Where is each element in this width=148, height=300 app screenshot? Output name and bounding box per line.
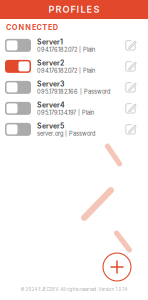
staticText: Server2 (37, 59, 64, 67)
button[interactable]: Toggle Server4 (0, 98, 37, 119)
button[interactable]: Toggle Server5 (0, 119, 37, 140)
button[interactable]: Add profile (103, 253, 131, 281)
button[interactable]: Edit Server3 (125, 78, 148, 97)
staticText: 094.176.182.072 | Plain (37, 67, 95, 74)
button[interactable]: Edit Server1 (125, 36, 148, 55)
staticText: Server5 (37, 122, 64, 130)
staticText: CONNECTED (6, 23, 58, 32)
staticText: Server4 (37, 101, 65, 109)
button[interactable]: Toggle Server2 (0, 56, 37, 77)
staticText: server.org | Password (37, 130, 95, 137)
staticText: Server1 (37, 38, 63, 46)
staticText: © 2024 EJECDEV. All rights reserved. Ver… (20, 287, 127, 292)
staticText: 095.179.182.166 | Password (37, 88, 110, 95)
staticText: 095.179.134.197 | Plain (37, 109, 94, 116)
button[interactable]: Toggle Server1 (0, 35, 37, 56)
button[interactable]: Edit Server4 (125, 99, 148, 118)
staticText: Server3 (37, 80, 64, 88)
button[interactable]: Toggle Server3 (0, 77, 37, 98)
staticText: 094.176.182.072 | Plain (37, 46, 95, 53)
button[interactable]: Edit Server5 (125, 120, 148, 139)
staticText: PROFILES (48, 4, 99, 15)
button[interactable]: Edit Server2 (125, 57, 148, 76)
